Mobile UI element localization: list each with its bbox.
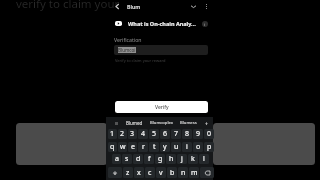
button[interactable]: s bbox=[122, 154, 132, 164]
staticText: 0 bbox=[207, 129, 212, 139]
staticText: Blumcoi bbox=[118, 47, 136, 53]
staticText: 9 bbox=[196, 129, 201, 139]
staticText: r bbox=[142, 142, 145, 152]
staticText: 5 bbox=[152, 129, 157, 139]
button[interactable]: More options bbox=[201, 1, 212, 12]
button[interactable]: Keyboard options bbox=[114, 121, 118, 125]
button[interactable]: c bbox=[145, 167, 155, 178]
button[interactable]: g bbox=[155, 154, 165, 164]
button[interactable]: d bbox=[133, 154, 143, 164]
staticText: Verification bbox=[114, 36, 142, 43]
button[interactable]: u bbox=[171, 142, 181, 152]
button[interactable]: a bbox=[112, 154, 121, 164]
button[interactable]: 5 bbox=[149, 129, 159, 139]
button[interactable]: Expand suggestions bbox=[204, 121, 208, 125]
staticText: Verify bbox=[155, 104, 169, 111]
button[interactable]: f bbox=[144, 154, 154, 164]
button[interactable]: 1 bbox=[108, 129, 117, 139]
staticText: What is On-chain Analy... bbox=[128, 20, 196, 27]
staticText: o bbox=[196, 142, 201, 152]
staticText: 3 bbox=[130, 129, 135, 139]
staticText: g bbox=[158, 154, 163, 164]
button[interactable]: 8 bbox=[182, 129, 192, 139]
staticText: j bbox=[181, 154, 183, 164]
button[interactable]: j bbox=[177, 154, 187, 164]
button[interactable]: i bbox=[182, 142, 192, 152]
staticText: s bbox=[125, 154, 129, 164]
staticText: 6 bbox=[163, 129, 168, 139]
button[interactable]: Expand bbox=[188, 1, 199, 12]
button[interactable]: m bbox=[189, 167, 199, 178]
button[interactable]: e bbox=[128, 142, 137, 152]
button[interactable]: 2 bbox=[118, 129, 127, 139]
button[interactable]: Blumcoi bbox=[114, 45, 208, 55]
button[interactable]: k bbox=[188, 154, 198, 164]
staticText: i bbox=[204, 22, 206, 27]
staticText: 4 bbox=[141, 129, 146, 139]
staticText: 1 bbox=[110, 129, 115, 139]
staticText: d bbox=[136, 154, 141, 164]
staticText: c bbox=[148, 168, 152, 178]
staticText: y bbox=[163, 142, 167, 152]
staticText: n bbox=[181, 168, 186, 178]
button[interactable]: What is On-chain Analy... bbox=[115, 18, 208, 29]
button[interactable]: v bbox=[156, 167, 166, 178]
staticText: x bbox=[137, 168, 141, 178]
button[interactable]: y bbox=[160, 142, 170, 152]
staticText: verify to claim your bbox=[16, 0, 120, 12]
staticText: h bbox=[169, 154, 174, 164]
button[interactable]: Blumcoplex bbox=[150, 120, 173, 126]
staticText: 2 bbox=[120, 129, 125, 139]
button[interactable]: 0 bbox=[204, 129, 214, 139]
staticText: t bbox=[153, 142, 156, 152]
button[interactable]: t bbox=[149, 142, 159, 152]
button[interactable]: l bbox=[199, 154, 209, 164]
staticText: Blum bbox=[127, 3, 141, 10]
button[interactable]: 9 bbox=[193, 129, 203, 139]
staticText: f bbox=[148, 154, 151, 164]
button[interactable]: 6 bbox=[160, 129, 170, 139]
button[interactable]: Back bbox=[112, 1, 123, 12]
staticText: b bbox=[170, 168, 175, 178]
staticText: Verify to claim your reward bbox=[115, 58, 166, 63]
staticText: l bbox=[203, 154, 205, 164]
staticText: m bbox=[191, 168, 198, 178]
button[interactable]: 4 bbox=[138, 129, 148, 139]
button[interactable]: 3 bbox=[128, 129, 137, 139]
button[interactable]: Blumed bbox=[126, 120, 143, 126]
staticText: u bbox=[174, 142, 179, 152]
staticText: k bbox=[191, 154, 195, 164]
staticText: i bbox=[186, 142, 188, 152]
button[interactable]: h bbox=[166, 154, 176, 164]
button[interactable]: Shift bbox=[108, 167, 122, 178]
button[interactable]: Backspace bbox=[200, 167, 214, 178]
staticText: a bbox=[115, 154, 119, 164]
button[interactable]: Blumess bbox=[180, 120, 197, 126]
button[interactable]: n bbox=[178, 167, 188, 178]
button[interactable]: z bbox=[123, 167, 133, 178]
button[interactable]: o bbox=[193, 142, 203, 152]
staticText: v bbox=[159, 168, 163, 178]
staticText: p bbox=[207, 142, 212, 152]
button[interactable]: r bbox=[138, 142, 148, 152]
button[interactable]: w bbox=[118, 142, 127, 152]
staticText: z bbox=[126, 168, 130, 178]
staticText: 7 bbox=[174, 129, 179, 139]
button[interactable]: Verify bbox=[115, 101, 208, 113]
staticText: w bbox=[120, 142, 126, 152]
button[interactable]: b bbox=[167, 167, 177, 178]
button[interactable]: p bbox=[204, 142, 214, 152]
staticText: q bbox=[110, 142, 115, 152]
staticText: e bbox=[131, 142, 135, 152]
button[interactable]: x bbox=[134, 167, 144, 178]
button[interactable]: 7 bbox=[171, 129, 181, 139]
button[interactable]: q bbox=[108, 142, 117, 152]
staticText: 8 bbox=[185, 129, 190, 139]
